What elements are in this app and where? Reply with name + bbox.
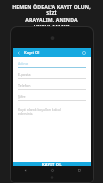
staticText: Kayıt Ol (24, 50, 40, 56)
button[interactable]: KAYIT OL (13, 162, 91, 166)
button[interactable]: Back (15, 49, 22, 56)
staticText: E-posta (18, 72, 31, 77)
staticText: Adınız (18, 61, 29, 66)
button[interactable]: Home (39, 166, 66, 174)
staticText: Şifre (18, 94, 26, 99)
button[interactable]: Info (80, 49, 87, 56)
staticText: Telefon (18, 83, 31, 88)
staticText: Kayıt olarak koşulları kabul edersiniz. (18, 107, 61, 116)
staticText: KAYIT OL (42, 162, 62, 166)
button[interactable]: Back (11, 166, 39, 174)
staticText: HEMEN ÖDEAL'A KAYIT OLUN, SİZİ ARAYALIM.… (7, 3, 96, 38)
button[interactable]: Recents (66, 166, 93, 174)
